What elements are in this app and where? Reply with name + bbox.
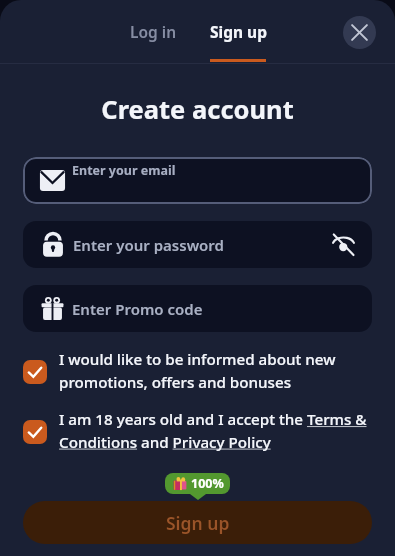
button[interactable]: Close [343,16,376,49]
button[interactable]: Checked [23,349,375,392]
button[interactable]: Sign up [23,501,372,544]
staticText: Enter Promo code [72,299,203,319]
staticText: Sign up [210,21,267,42]
staticText: I am 18 years old and I accept the Terms… [59,409,375,452]
staticText: Enter your email [72,162,176,179]
button[interactable]: Enter your email [23,157,372,204]
staticText: Log in [130,21,177,42]
button[interactable]: Checked [23,409,375,452]
button[interactable]: Enter Promo code [23,285,372,332]
staticText: Sign up [166,511,230,535]
button[interactable]: Log in [122,15,185,48]
other: Checked [23,360,47,384]
staticText: Create account [0,92,395,127]
staticText: I would like to be informed about new pr… [59,349,375,392]
staticText: 100% [191,475,224,492]
button[interactable]: Sign up [202,15,275,48]
staticText: Enter your password [73,235,224,255]
other: Checked [23,420,47,444]
button[interactable]: Show password [331,232,356,257]
button[interactable]: Enter your password [23,221,372,268]
